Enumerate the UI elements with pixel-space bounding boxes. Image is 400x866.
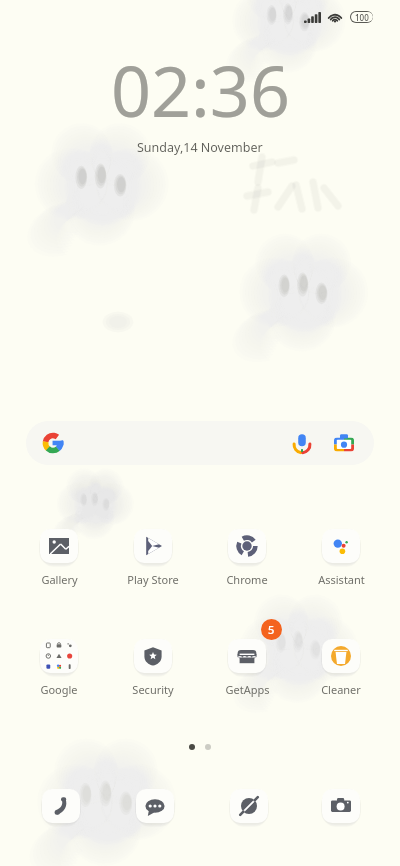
button[interactable]: Browser [202, 784, 296, 828]
staticText: Cleaner [321, 682, 361, 697]
staticText: Security [132, 682, 174, 697]
button[interactable]: Chrome [200, 525, 294, 587]
button[interactable]: 5 [200, 635, 294, 697]
staticText: Play Store [127, 572, 179, 587]
button[interactable]: Phone [14, 784, 108, 828]
button[interactable]: Gallery [12, 525, 106, 587]
button[interactable]: Messages [108, 784, 202, 828]
button[interactable]: Voice search [26, 421, 374, 465]
staticText: Google [40, 682, 78, 697]
button[interactable]: Security [106, 635, 200, 697]
staticText: Sunday,14 November [137, 139, 263, 156]
staticText: Assistant [318, 572, 365, 587]
button[interactable]: Cleaner [294, 635, 388, 697]
button[interactable]: Google Lens [330, 429, 358, 457]
staticText: GetApps [225, 682, 270, 697]
button[interactable]: Play Store [106, 525, 200, 587]
staticText: 02:36 [111, 42, 290, 137]
staticText: 5 [268, 622, 275, 637]
staticText: Gallery [41, 572, 78, 587]
staticText: Chrome [226, 572, 268, 587]
button[interactable]: Camera [296, 784, 386, 828]
button[interactable]: Voice search [288, 429, 316, 457]
button[interactable]: Google [12, 635, 106, 697]
button[interactable]: Assistant [294, 525, 388, 587]
staticText: 100 [355, 12, 369, 22]
